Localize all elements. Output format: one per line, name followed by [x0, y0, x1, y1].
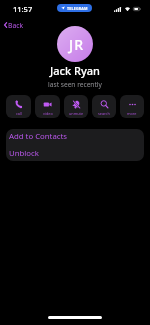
staticText: more [127, 111, 137, 116]
staticText: 11:57 [13, 4, 33, 14]
staticText: last seen recently [0, 80, 150, 89]
staticText: Jack Ryan [0, 63, 150, 78]
button[interactable]: unmute [64, 95, 88, 118]
staticText: Back [8, 21, 24, 30]
button[interactable]: more [120, 95, 144, 118]
button[interactable]: video [35, 95, 60, 118]
button[interactable]: search [92, 95, 116, 118]
button[interactable]: call [6, 95, 31, 118]
staticText: JR [69, 35, 85, 54]
button[interactable]: Unblock [6, 146, 144, 161]
staticText: search [98, 111, 110, 116]
button[interactable]: Back [0, 18, 24, 32]
staticText: unmute [69, 111, 84, 116]
staticText: Add to Contacts [9, 131, 68, 142]
staticText: Unblock [9, 148, 39, 159]
staticText: call [16, 111, 22, 116]
staticText: TELEGRAM [67, 6, 88, 11]
staticText: video [43, 111, 53, 116]
button[interactable]: Add to Contacts [6, 129, 144, 146]
